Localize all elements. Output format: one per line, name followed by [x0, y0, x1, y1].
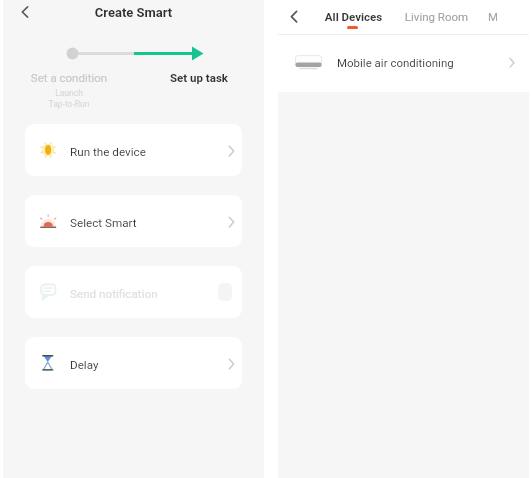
staticText: All Devices	[313, 10, 394, 30]
staticText: Tap-to-Run	[0, 99, 169, 109]
button[interactable]: Delay	[25, 337, 242, 389]
staticText: Mobile air conditioning	[337, 56, 454, 69]
staticText: Create Smart	[28, 5, 239, 20]
button[interactable]: All Devices	[313, 10, 394, 30]
button[interactable]: Living Room	[396, 10, 477, 30]
button[interactable]: Send notification	[25, 266, 242, 318]
staticText: Run the device	[70, 145, 146, 159]
staticText: Master Bedroom	[488, 10, 497, 23]
staticText: Send notification	[70, 287, 158, 301]
staticText: Select Smart	[70, 216, 137, 230]
button[interactable]: Run the device	[25, 124, 242, 176]
button[interactable]: Select Smart	[25, 195, 242, 247]
button[interactable]: Mobile air conditioning	[278, 34, 529, 92]
staticText: Launch	[0, 88, 169, 98]
button[interactable]: Master Bedroom	[488, 10, 497, 30]
staticText: Set a condition	[0, 71, 169, 84]
staticText: Delay	[70, 358, 99, 372]
staticText: Living Room	[396, 10, 477, 30]
button[interactable]: Back	[11, 0, 37, 24]
button[interactable]: Back	[281, 5, 307, 29]
staticText: Set up task	[99, 71, 299, 84]
